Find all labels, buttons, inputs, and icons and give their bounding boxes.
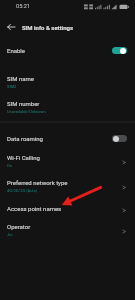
- staticText: Enable: [7, 47, 25, 54]
- staticText: Unavailable/Unknown: [7, 109, 46, 114]
- staticText: Wi-Fi Calling: [7, 154, 40, 161]
- staticText: Preferred network type: [7, 179, 68, 186]
- button[interactable]: Preferred network type: [0, 174, 135, 199]
- staticText: SIM name: [7, 75, 34, 82]
- staticText: Jio: [7, 232, 13, 237]
- other: Open: [117, 181, 129, 193]
- button[interactable]: Operator: [0, 218, 135, 243]
- button[interactable]: Access point names: [0, 200, 135, 220]
- other: Open: [117, 225, 129, 237]
- staticText: Operator: [7, 223, 31, 230]
- other: Open: [117, 204, 129, 216]
- button[interactable]: Wi-Fi Calling: [0, 149, 135, 174]
- staticText: 05:21: [16, 3, 30, 10]
- button[interactable]: Back: [3, 19, 19, 35]
- button[interactable]: SIM number: [0, 96, 135, 120]
- staticText: Data roaming: [7, 135, 43, 142]
- button[interactable]: Data roaming: [0, 132, 135, 145]
- staticText: 4G/3G/2G (Auto): [7, 188, 38, 193]
- staticText: SIM2: [7, 84, 17, 89]
- staticText: On: [7, 163, 12, 168]
- staticText: SIM number: [7, 100, 40, 107]
- button[interactable]: Enable: [0, 43, 135, 57]
- staticText: Access point names: [7, 205, 62, 212]
- button[interactable]: SIM name: [0, 70, 135, 96]
- other: Open: [117, 156, 129, 168]
- staticText: SIM info & settings: [22, 24, 73, 31]
